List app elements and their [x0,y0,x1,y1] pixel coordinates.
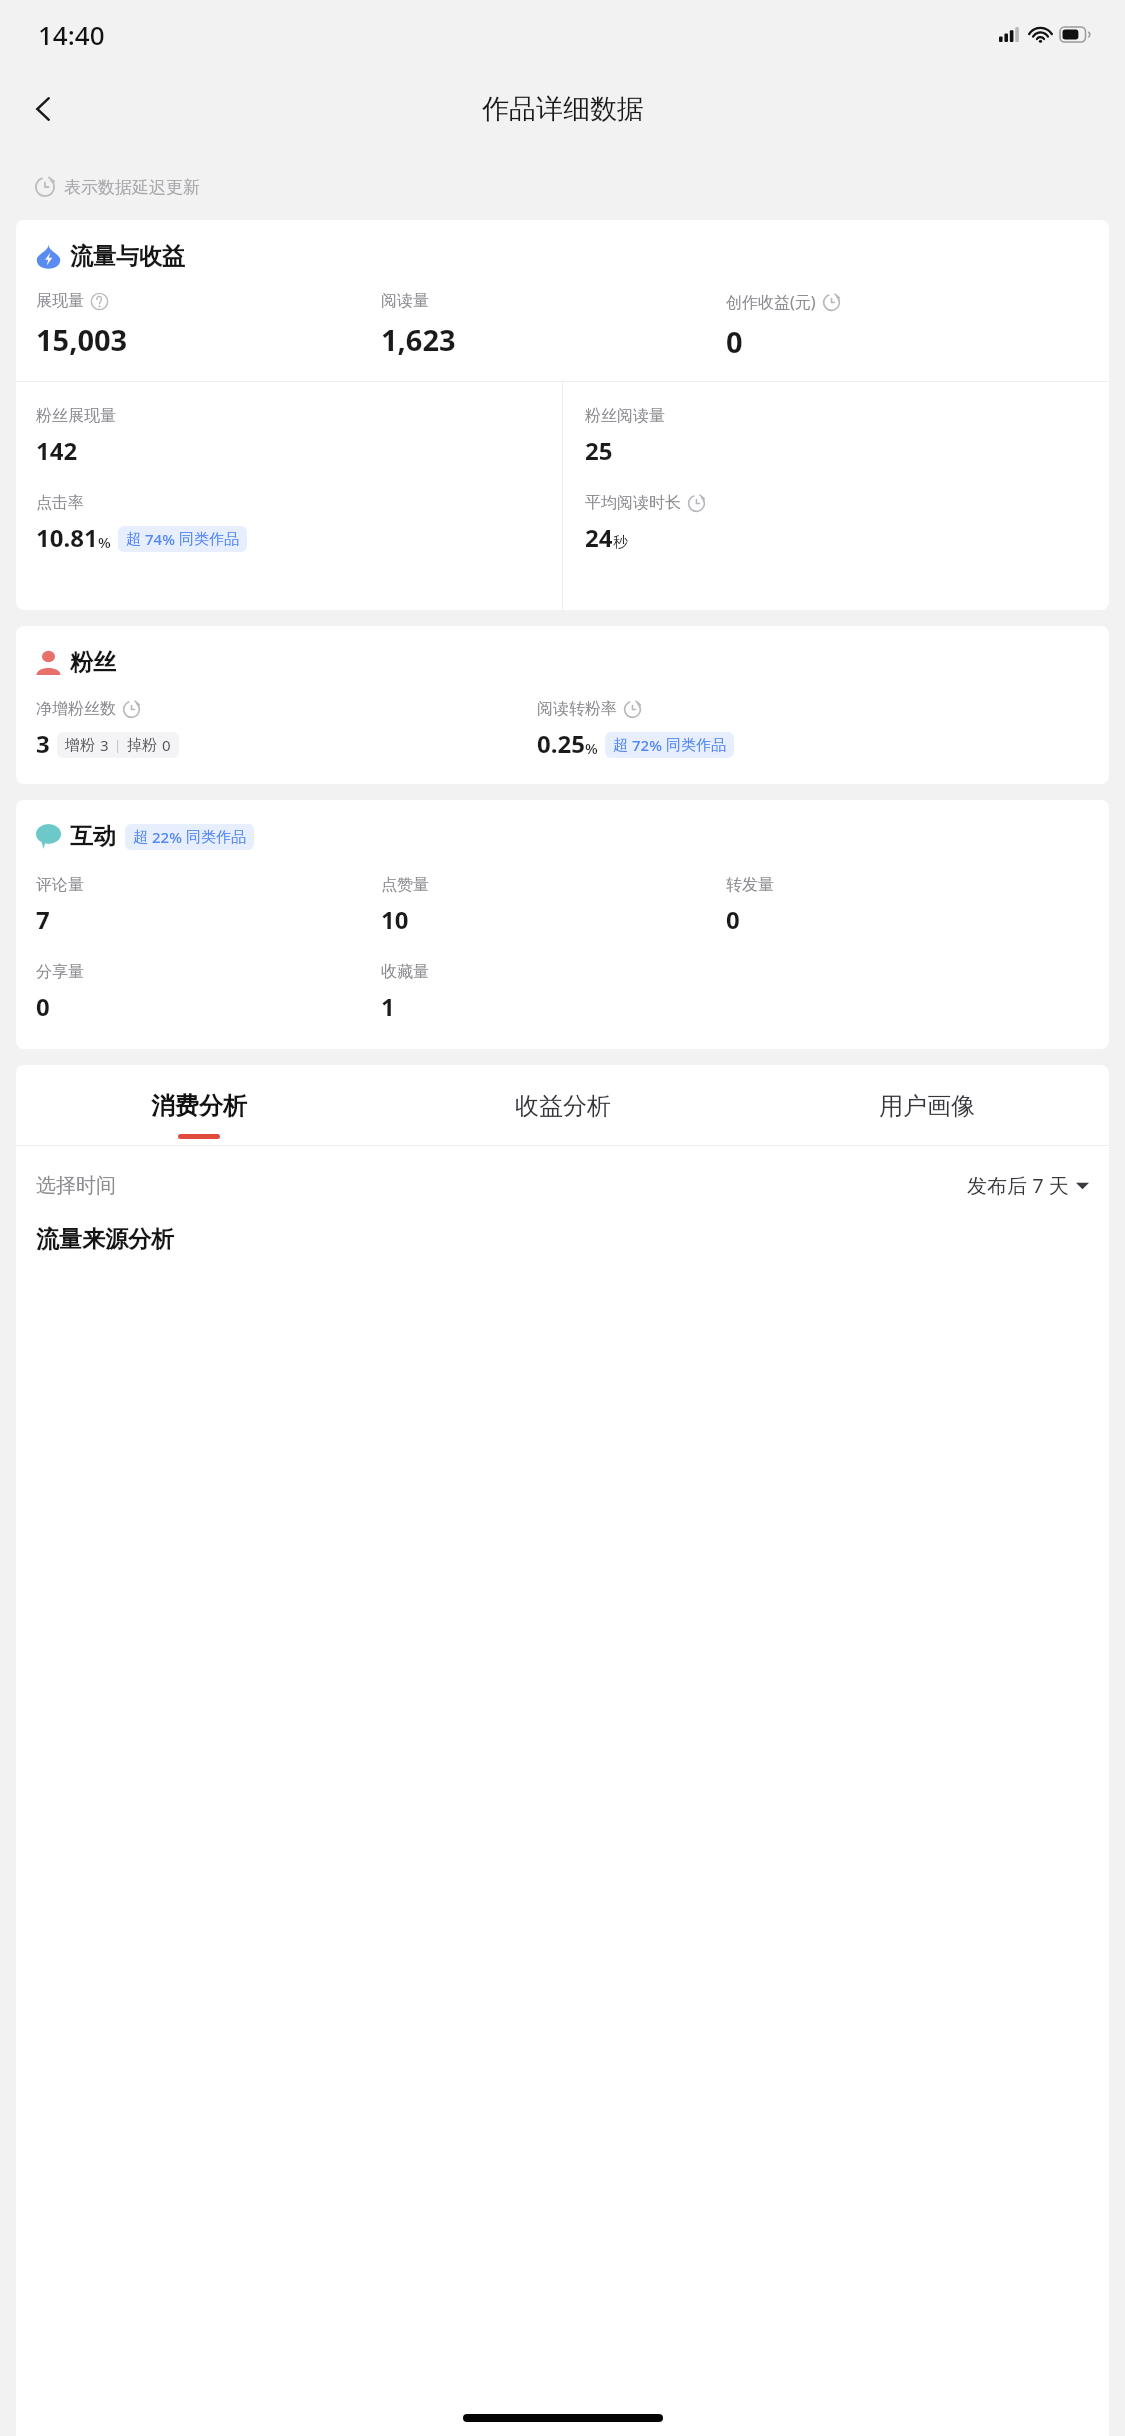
button[interactable]: Back [20,85,68,133]
staticText: 72% [632,735,662,755]
staticText: 阅读量 [381,291,429,311]
staticText: 净增粉丝数 [36,699,116,719]
staticText: 74% [145,529,175,549]
staticText: 消费分析 [151,1091,247,1121]
staticText: % [98,532,111,552]
staticText: 创作收益(元) [726,291,816,313]
staticText: 转发量 [726,875,774,895]
button[interactable]: 用户画像 [745,1091,1109,1139]
staticText: 增粉 [65,736,95,755]
staticText: 粉丝展现量 [36,406,116,426]
staticText: 秒 [613,533,628,552]
staticText: 发布后 7 天 [967,1172,1069,1199]
staticText: 25 [585,434,613,467]
staticText: 互动 [70,822,116,851]
staticText: 同类作品 [666,736,726,755]
staticText: 作品详细数据 [482,92,644,126]
staticText: 同类作品 [179,530,239,549]
staticText: 超 [126,530,141,549]
staticText: 展现量 [36,291,84,311]
staticText: 收益分析 [515,1091,611,1121]
staticText: 超 [133,828,148,847]
staticText: 表示数据延迟更新 [64,177,200,198]
staticText: 0 [162,735,171,755]
staticText: 142 [36,434,78,467]
staticText: 收藏量 [381,962,429,982]
staticText: 10.81 [36,521,98,554]
staticText: 15,003 [36,320,128,359]
staticText: 10 [381,903,409,936]
staticText: 同类作品 [186,828,246,847]
staticText: 流量来源分析 [36,1225,174,1254]
staticText: 0 [726,322,743,361]
staticText: 14:40 [38,17,105,52]
staticText: 1,623 [381,320,456,359]
staticText: 评论量 [36,875,84,895]
staticText: 超 [613,736,628,755]
staticText: 分享量 [36,962,84,982]
button[interactable]: 增粉 [57,732,179,758]
staticText: 粉丝阅读量 [585,406,665,426]
button[interactable]: 发布后 7 天 [967,1172,1089,1199]
staticText: 7 [36,903,50,936]
staticText: 用户画像 [879,1091,975,1121]
staticText: 0.25 [537,727,585,760]
staticText: 0 [36,990,50,1023]
button[interactable]: 超 [125,824,254,850]
staticText: 平均阅读时长 [585,493,681,513]
staticText: 1 [381,990,395,1023]
button[interactable]: 超 [605,732,734,758]
staticText: 0 [726,903,740,936]
staticText: 3 [100,735,109,755]
staticText: | [114,736,122,754]
staticText: 流量与收益 [70,242,185,271]
button[interactable]: 消费分析 [16,1091,381,1139]
staticText: % [585,738,598,758]
staticText: 点赞量 [381,875,429,895]
button[interactable]: 收益分析 [381,1091,745,1139]
staticText: 3 [36,727,50,760]
staticText: 点击率 [36,493,84,513]
staticText: 22% [152,827,182,847]
staticText: 掉粉 [127,736,157,755]
button[interactable]: 超 [118,526,247,552]
staticText: 24 [585,521,613,554]
staticText: 阅读转粉率 [537,699,617,719]
staticText: 粉丝 [70,648,116,677]
staticText: 选择时间 [36,1173,116,1198]
